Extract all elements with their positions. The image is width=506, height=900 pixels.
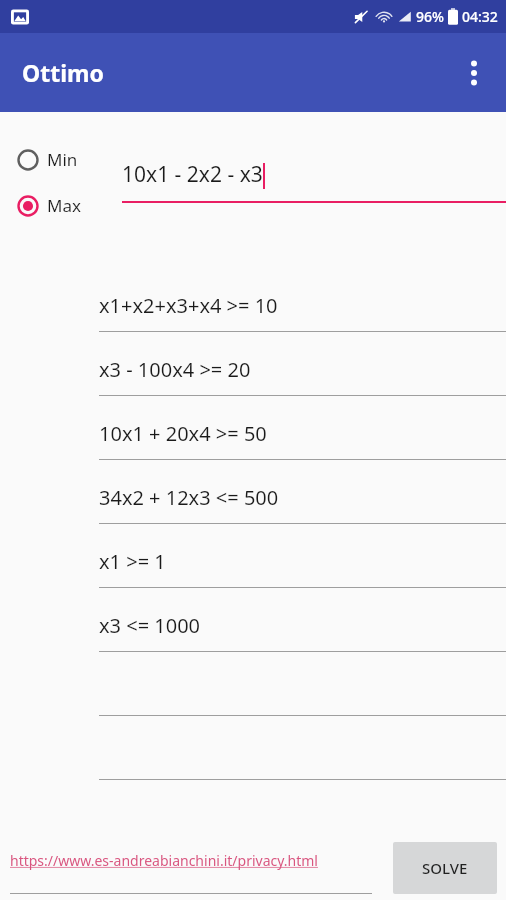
button[interactable]: x3 <= 1000 <box>99 609 506 667</box>
staticText: Min <box>47 148 78 171</box>
button[interactable] <box>99 673 506 731</box>
staticText: 10x1 - 2x2 - x3 <box>122 160 263 189</box>
button[interactable]: More options <box>450 49 498 97</box>
staticText: Max <box>47 194 81 217</box>
staticText: x3 - 100x4 >= 20 <box>99 356 251 383</box>
button[interactable]: 10x1 - 2x2 - x3 <box>122 160 506 210</box>
staticText: 04:32 <box>462 7 498 26</box>
button[interactable]: 34x2 + 12x3 <= 500 <box>99 481 506 539</box>
staticText: x1 >= 1 <box>99 548 166 575</box>
button[interactable] <box>99 737 506 795</box>
staticText: 34x2 + 12x3 <= 500 <box>99 484 279 511</box>
staticText: 96% <box>416 7 444 26</box>
staticText: x1+x2+x3+x4 >= 10 <box>99 292 278 319</box>
button[interactable]: x3 - 100x4 >= 20 <box>99 353 506 411</box>
button[interactable]: Min <box>12 144 83 175</box>
staticText: SOLVE <box>422 858 468 878</box>
button[interactable]: x1+x2+x3+x4 >= 10 <box>99 289 506 347</box>
staticText: https://www.es-andreabianchini.it/privac… <box>10 851 318 870</box>
button[interactable]: Max <box>12 190 86 221</box>
button[interactable]: SOLVE <box>393 842 497 894</box>
staticText: x3 <= 1000 <box>99 612 201 639</box>
button[interactable]: https://www.es-andreabianchini.it/privac… <box>10 851 372 899</box>
staticText: Ottimo <box>22 57 104 88</box>
button[interactable]: x1 >= 1 <box>99 545 506 603</box>
button[interactable]: 10x1 + 20x4 >= 50 <box>99 417 506 475</box>
staticText: 10x1 + 20x4 >= 50 <box>99 420 267 447</box>
